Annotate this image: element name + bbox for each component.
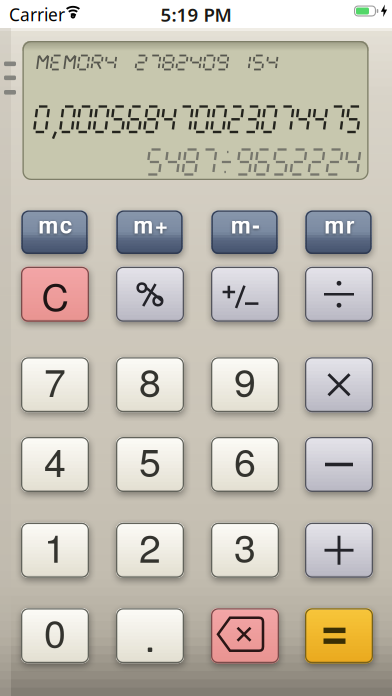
staticText: 5 <box>139 432 161 488</box>
staticText: 9 <box>234 352 256 408</box>
staticText: 2 <box>139 518 161 574</box>
staticText: 4 <box>44 432 66 488</box>
button[interactable]: 0 <box>21 608 89 663</box>
staticText: 1 <box>44 518 66 574</box>
button[interactable]: 7 <box>21 357 89 412</box>
staticText: 7 <box>44 352 66 408</box>
button[interactable]: Plus minus <box>211 267 279 322</box>
button[interactable]: Decimal point <box>116 608 184 663</box>
button[interactable]: 2 <box>116 523 184 578</box>
staticText: 3 <box>234 518 256 574</box>
button[interactable]: Backspace <box>211 608 279 663</box>
button[interactable]: 6 <box>211 437 279 492</box>
staticText: mr <box>324 208 355 240</box>
button[interactable]: 4 <box>21 437 89 492</box>
staticText: 0 <box>44 603 66 659</box>
staticText: 6 <box>234 432 256 488</box>
button[interactable]: 8 <box>116 357 184 412</box>
button[interactable]: Add <box>305 523 373 578</box>
button[interactable]: Memory mr <box>305 210 371 254</box>
button[interactable]: Subtract <box>305 437 373 492</box>
staticText: 8 <box>139 352 161 408</box>
button[interactable]: 3 <box>211 523 279 578</box>
staticText: Carrier <box>9 3 65 26</box>
button[interactable]: 9 <box>211 357 279 412</box>
staticText: 5:19 PM <box>160 2 231 27</box>
button[interactable]: 5 <box>116 437 184 492</box>
button[interactable]: Memory m- <box>211 210 277 254</box>
button[interactable]: Equals <box>305 608 373 663</box>
button[interactable]: Clear <box>21 267 89 322</box>
staticText: mc <box>38 208 73 240</box>
button[interactable]: Multiply <box>305 357 373 412</box>
staticText: C <box>41 268 68 322</box>
button[interactable]: Divide <box>305 267 373 322</box>
button[interactable]: 1 <box>21 523 89 578</box>
button[interactable]: Memory m+ <box>116 210 182 254</box>
button[interactable]: Percent <box>116 267 184 322</box>
button[interactable]: Memory mc <box>21 210 87 254</box>
staticText: m+ <box>133 208 168 240</box>
staticText: m- <box>231 208 260 240</box>
